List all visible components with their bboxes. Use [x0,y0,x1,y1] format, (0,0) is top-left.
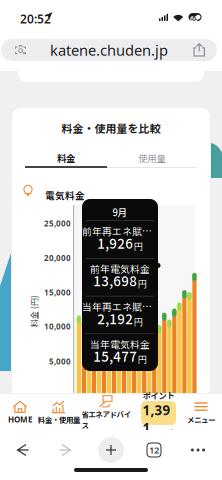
staticText: 料金・使用量 [38,414,80,425]
staticText: 12 [149,444,159,456]
staticText: 60 [190,14,198,23]
button[interactable]: Forward [50,436,82,464]
staticText: メニュー [187,414,215,425]
button[interactable]: 使用量 [107,149,197,167]
staticText: 1,391 [142,401,170,437]
staticText: 前年再エネ賦課金 [82,224,158,238]
button[interactable]: 料金 [25,149,107,167]
staticText: 1,926 [97,233,133,253]
button[interactable]: Back [6,436,38,464]
staticText: 20:52 [20,11,51,27]
staticText: 当年再エネ賦課金 [82,299,158,314]
staticText: 円 [134,239,143,253]
button[interactable]: More [182,436,214,464]
staticText: 当年電気料金 [90,337,150,351]
button[interactable]: 料金・使用量 [38,396,80,429]
staticText: 円 [138,352,147,366]
staticText: 料金・使用量を比較 [61,120,160,136]
staticText: 料金 (円) [18,305,50,317]
staticText: 25,000 [44,218,71,229]
button[interactable]: メニュー [182,396,220,429]
staticText: 13,698 [93,271,137,290]
staticText: 省エネアドバイス [81,409,130,430]
staticText: 9月 [112,205,127,219]
staticText: 15,477 [93,346,137,366]
staticText: HOME [8,414,32,425]
staticText: 電気料金 [45,188,85,202]
staticText: 料金 [57,151,75,165]
button[interactable]: ポイント [141,401,176,425]
staticText: 10,000 [44,321,71,332]
staticText: ポイント [142,389,174,401]
staticText: 円 [138,277,147,290]
button[interactable]: katene.chuden.jp [1,39,217,61]
staticText: P [170,428,174,437]
staticText: 円 [134,315,143,328]
staticText: 20,000 [44,253,71,263]
staticText: 前年電気料金 [90,261,150,276]
staticText: 2,192 [97,309,133,328]
button[interactable]: Tabs [138,436,170,464]
button[interactable]: HOME [2,396,38,429]
button[interactable]: New Tab [95,436,127,464]
staticText: katene.chuden.jp [50,40,168,60]
staticText: 使用量 [138,151,165,165]
staticText: 15,000 [44,287,71,298]
staticText: 5,000 [49,356,71,367]
button[interactable]: 省エネアドバイス [80,396,132,429]
